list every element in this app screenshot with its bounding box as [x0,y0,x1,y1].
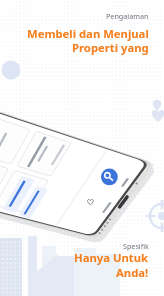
staticText: Hanya Untuk [74,250,149,265]
staticText: Pengalaman [106,11,149,21]
staticText: Properti yang [72,40,149,55]
staticText: Membeli dan Menjual [27,26,149,41]
staticText: Anda! [116,265,149,280]
staticText: Spesifik [123,241,149,251]
